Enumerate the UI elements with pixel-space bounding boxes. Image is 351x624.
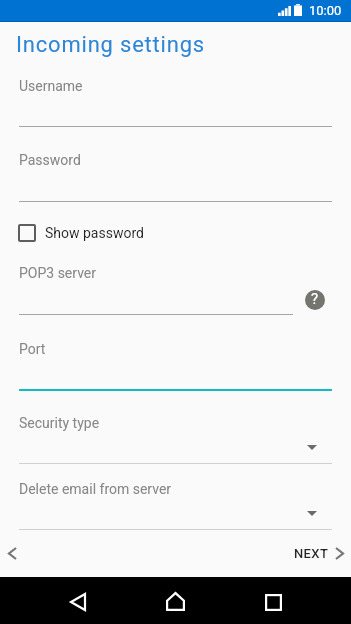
staticText: Username [19, 78, 83, 94]
staticText: ? [311, 290, 319, 308]
button[interactable]: Show password [18, 224, 351, 242]
staticText: NEXT [294, 546, 329, 561]
staticText: Delete email from server [19, 481, 172, 497]
staticText: POP3 server [19, 265, 97, 281]
staticText: Port [19, 341, 46, 357]
button[interactable]: Previous [0, 538, 30, 568]
staticText: Incoming settings [16, 32, 206, 58]
staticText: Password [19, 152, 81, 168]
button[interactable]: Help [305, 290, 325, 310]
button[interactable]: Home [152, 578, 198, 624]
button[interactable]: Recents [250, 578, 296, 624]
button[interactable]: Back [54, 578, 100, 624]
staticText: Show password [45, 225, 144, 241]
button[interactable]: NEXT [294, 538, 343, 568]
staticText: Security type [19, 415, 100, 431]
staticText: 10:00 [309, 3, 342, 18]
